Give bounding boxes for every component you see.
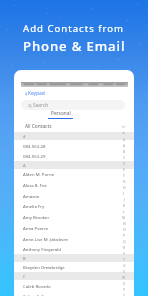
staticText: J — [124, 197, 125, 202]
button[interactable]: Caleb Ricardo — [14, 280, 134, 291]
staticText: A — [23, 163, 26, 168]
staticText: E — [123, 167, 125, 172]
staticText: T — [123, 257, 125, 262]
staticText: Celina A. Sorensen — [23, 293, 61, 296]
button[interactable]: Amy Brooker — [14, 211, 134, 222]
button[interactable]: 084-563-29 — [14, 150, 134, 161]
staticText: All Contacts — [25, 123, 52, 130]
staticText: Caleb Ricardo — [23, 283, 51, 289]
button[interactable]: Personal — [48, 110, 73, 119]
staticText: A — [123, 143, 126, 148]
button[interactable]: Brayden Drewbridge — [14, 261, 134, 272]
staticText: Amelia Fry — [23, 203, 45, 209]
button[interactable]: 084-563-28 — [14, 140, 134, 151]
staticText: Anthony Fitzgerald — [23, 246, 61, 252]
staticText: Alden M. Porrie — [23, 171, 55, 177]
staticText: B — [23, 256, 26, 261]
staticText: K — [123, 203, 126, 208]
staticText: Y — [123, 287, 125, 292]
button[interactable]: Alden M. Porrie — [14, 168, 134, 179]
staticText: G — [123, 179, 126, 184]
staticText: Amazon — [23, 193, 40, 199]
button[interactable]: Anthony Fitzgerald — [14, 243, 134, 254]
staticText: L — [123, 209, 125, 214]
staticText: Personal — [51, 110, 71, 117]
staticText: Amy Brooker — [23, 214, 50, 220]
staticText: ★ — [122, 131, 126, 135]
button[interactable]: Search — [21, 100, 125, 110]
staticText: B — [123, 149, 126, 154]
staticText: V — [123, 269, 126, 274]
button[interactable]: Alphabet index — [121, 130, 127, 296]
staticText: S — [123, 251, 125, 256]
staticText: # — [23, 134, 26, 139]
staticText: P — [123, 233, 126, 238]
staticText: R — [123, 245, 126, 250]
staticText: X — [123, 281, 125, 286]
staticText: # — [123, 137, 126, 142]
staticText: Z — [123, 293, 125, 296]
staticText: Add Contacts from — [23, 22, 125, 35]
staticText: Alicia B. Fox — [23, 182, 47, 188]
staticText: D — [123, 161, 126, 166]
button[interactable]: Keypad — [24, 89, 45, 98]
staticText: Anna Pearce — [23, 225, 49, 231]
staticText: Phone & Email — [23, 37, 126, 55]
staticText: Search — [33, 102, 49, 109]
staticText: 084-563-28 — [23, 143, 46, 149]
button[interactable]: Celina A. Sorensen — [14, 290, 134, 296]
button[interactable]: Amelia Fry — [14, 200, 134, 211]
staticText: 084-563-29 — [23, 153, 46, 159]
button[interactable]: Anna Pearce — [14, 222, 134, 233]
staticText: M — [122, 215, 126, 220]
staticText: Q — [123, 239, 126, 244]
button[interactable]: Alicia B. Fox — [14, 179, 134, 190]
staticText: Keypad — [28, 90, 45, 97]
staticText: Brayden Drewbridge — [23, 264, 65, 270]
staticText: H — [123, 185, 126, 190]
staticText: C — [123, 155, 126, 160]
button[interactable]: Anne-Lise M. Jakobsen — [14, 233, 134, 244]
staticText: Anne-Lise M. Jakobsen — [23, 236, 69, 242]
button[interactable]: All Contacts — [14, 120, 134, 132]
staticText: I — [123, 191, 125, 196]
staticText: W — [122, 275, 126, 280]
button[interactable]: Amazon — [14, 190, 134, 201]
staticText: U — [123, 263, 126, 268]
staticText: O — [123, 227, 126, 232]
staticText: N — [123, 221, 126, 226]
staticText: F — [123, 173, 125, 178]
staticText: C — [23, 274, 26, 279]
